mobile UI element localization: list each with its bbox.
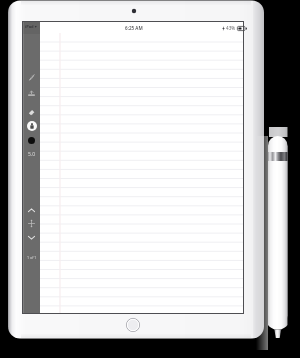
staticText: 1 of 1 <box>27 255 37 260</box>
button[interactable]: Scroll down <box>27 233 36 242</box>
button[interactable]: Pen tool <box>27 73 36 82</box>
button[interactable]: Eraser <box>27 108 36 117</box>
button[interactable]: Marker tool <box>27 121 37 131</box>
button[interactable]: Share <box>27 89 36 98</box>
staticText: iPad ▾ <box>25 24 37 29</box>
button[interactable]: Scroll up <box>27 206 36 215</box>
staticText: 43% <box>226 25 236 31</box>
staticText: 5.0 <box>28 151 36 158</box>
button[interactable]: Move canvas <box>27 219 36 228</box>
staticText: 6:25 AM <box>125 25 143 31</box>
button[interactable]: Black colour <box>28 137 35 144</box>
